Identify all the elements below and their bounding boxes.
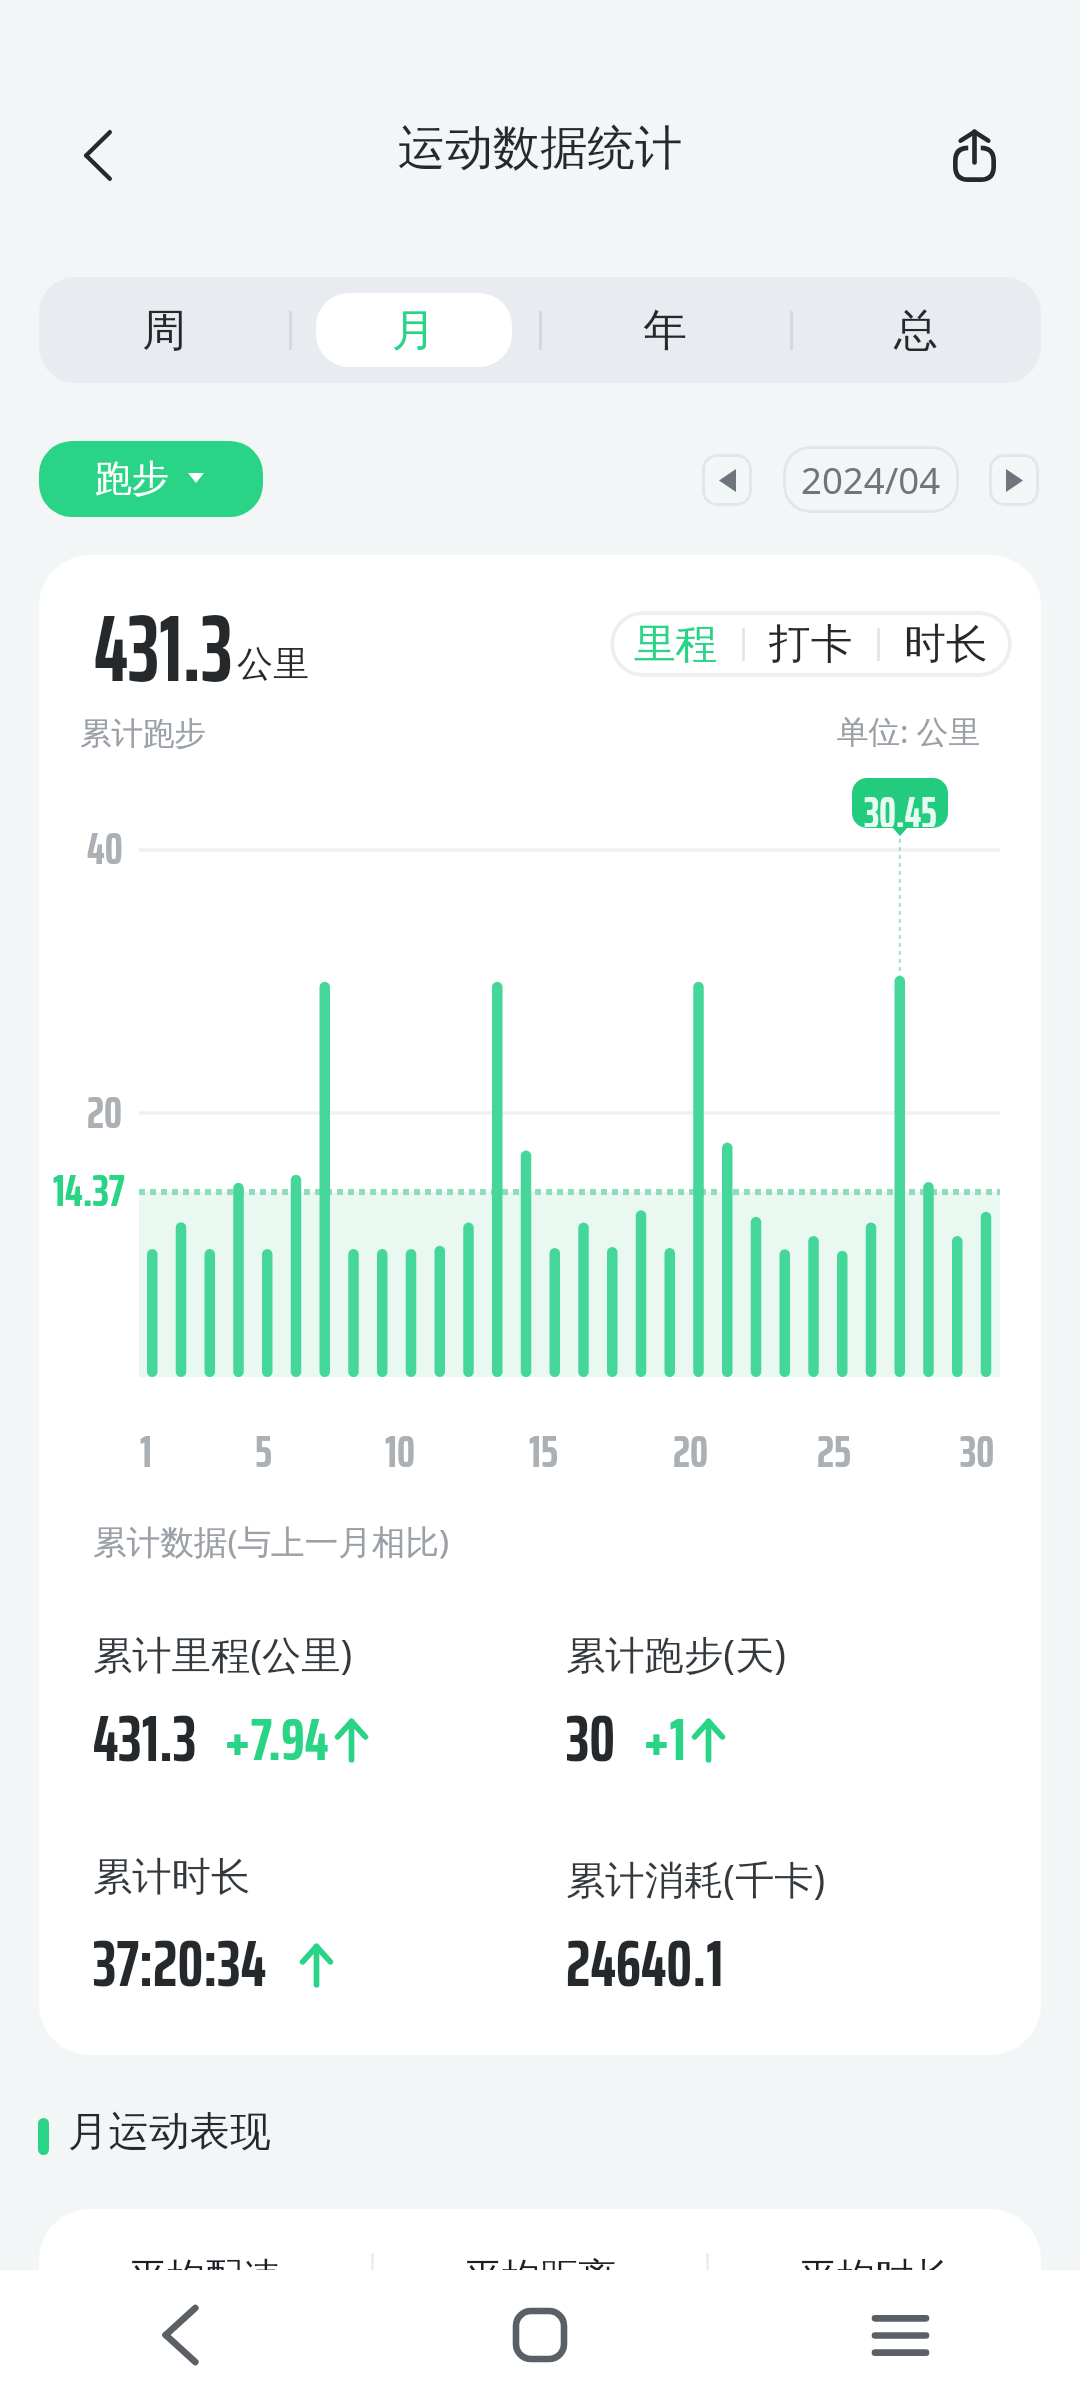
staticText: 24640.1 (566, 1913, 724, 2015)
staticText: 25 (817, 1416, 852, 1487)
button[interactable]: Previous month (702, 454, 752, 506)
staticText: 30 (960, 1416, 995, 1487)
staticText: 时长 (904, 618, 988, 671)
button[interactable]: 周 (66, 293, 262, 367)
button[interactable]: 2024/04 (783, 446, 959, 513)
button[interactable]: 跑步 (39, 441, 263, 517)
button[interactable]: Back (0, 2270, 360, 2400)
button[interactable]: 年 (566, 293, 763, 367)
staticText: 累计数据(与上一月相比) (93, 1518, 450, 1564)
staticText: 15 (529, 1416, 559, 1487)
staticText: +1 (643, 1692, 686, 1786)
staticText: 跑步 (95, 455, 169, 501)
button[interactable]: Back (42, 117, 154, 193)
button[interactable]: Recents (720, 2270, 1080, 2400)
staticText: 14.37 (53, 1155, 125, 1226)
staticText: +7.94 (224, 1692, 329, 1786)
staticText: 总 (894, 303, 938, 358)
staticText: 月运动表现 (68, 2106, 271, 2157)
staticText: 20 (87, 1077, 123, 1148)
button[interactable]: 月 (316, 293, 512, 367)
button[interactable]: Next month (989, 454, 1039, 506)
staticText: 年 (643, 303, 687, 358)
button[interactable]: 打卡 (745, 611, 877, 677)
staticText: 累计里程(公里) (93, 1627, 353, 1681)
staticText: 20 (673, 1416, 709, 1487)
staticText: 40 (87, 813, 123, 884)
staticText: 月 (392, 303, 436, 358)
button[interactable]: Home (360, 2270, 720, 2400)
staticText: 累计时长 (93, 1852, 251, 1902)
staticText: 1 (140, 1416, 153, 1487)
staticText: 周 (142, 303, 186, 358)
staticText: 10 (385, 1416, 416, 1487)
staticText: 单位: 公里 (837, 709, 980, 752)
staticText: 累计跑步 (80, 714, 206, 754)
staticText: 37:20:34 (93, 1913, 267, 2015)
staticText: 累计消耗(千卡) (566, 1852, 826, 1906)
staticText: 431.3 (94, 574, 233, 722)
staticText: 累计跑步(天) (566, 1627, 787, 1681)
staticText: 运动数据统计 (398, 118, 683, 178)
staticText: 5 (255, 1416, 273, 1487)
staticText: 30 (566, 1688, 616, 1790)
staticText: 平均配速 (129, 2253, 282, 2301)
staticText: 2024/04 (801, 455, 941, 505)
button[interactable]: Share (929, 116, 1019, 194)
button[interactable]: 里程 (610, 611, 742, 677)
staticText: 公里 (237, 641, 309, 686)
button[interactable]: 时长 (880, 611, 1012, 677)
staticText: 打卡 (769, 618, 853, 671)
staticText: 里程 (634, 618, 718, 671)
staticText: 30.45 (864, 778, 937, 827)
staticText: 平均时长 (799, 2253, 952, 2301)
staticText: 431.3 (93, 1688, 197, 1790)
staticText: 平均距离 (464, 2253, 617, 2301)
button[interactable]: 总 (817, 293, 1014, 367)
